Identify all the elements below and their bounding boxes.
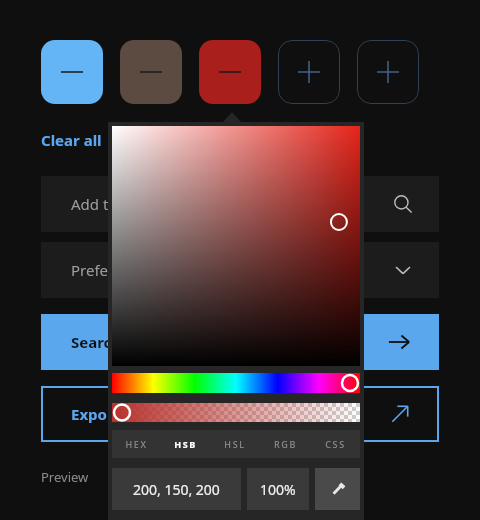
button[interactable]: 100% bbox=[247, 468, 309, 510]
button[interactable]: 200, 150, 200 bbox=[112, 468, 241, 510]
button[interactable]: HEX bbox=[112, 430, 161, 458]
button[interactable]: Add colour bbox=[357, 40, 419, 104]
button[interactable] bbox=[112, 403, 360, 422]
button[interactable]: Export bbox=[41, 386, 439, 442]
button[interactable]: CSS bbox=[310, 430, 360, 458]
button[interactable]: Remove colour bbox=[199, 40, 261, 104]
button[interactable]: Remove colour bbox=[120, 40, 182, 104]
staticText: HSL bbox=[224, 438, 246, 450]
staticText: HSB bbox=[174, 438, 197, 450]
button[interactable] bbox=[112, 126, 360, 366]
button[interactable]: RGB bbox=[260, 430, 310, 458]
button[interactable]: Add colour bbox=[278, 40, 340, 104]
staticText: 100% bbox=[260, 480, 296, 499]
button[interactable]: Search bbox=[41, 314, 439, 370]
button[interactable]: Remove colour bbox=[41, 40, 103, 104]
staticText: HEX bbox=[125, 438, 148, 450]
staticText: Export bbox=[71, 404, 121, 424]
button[interactable]: Eyedropper bbox=[315, 468, 360, 510]
staticText: Preferences bbox=[71, 260, 155, 280]
staticText: CSS bbox=[325, 438, 346, 450]
staticText: RGB bbox=[274, 438, 297, 450]
staticText: Clear all bbox=[41, 130, 102, 150]
staticText: 200, 150, 200 bbox=[133, 480, 220, 499]
button[interactable] bbox=[112, 373, 360, 393]
button[interactable]: Add to collection bbox=[41, 176, 439, 232]
button[interactable]: HSB bbox=[161, 430, 210, 458]
button[interactable]: HSL bbox=[210, 430, 260, 458]
staticText: Preview bbox=[41, 468, 89, 486]
button[interactable]: Clear all bbox=[41, 130, 102, 150]
button[interactable]: Preferences bbox=[41, 242, 439, 298]
staticText: Add to collection bbox=[71, 194, 189, 214]
staticText: Search bbox=[71, 332, 122, 352]
